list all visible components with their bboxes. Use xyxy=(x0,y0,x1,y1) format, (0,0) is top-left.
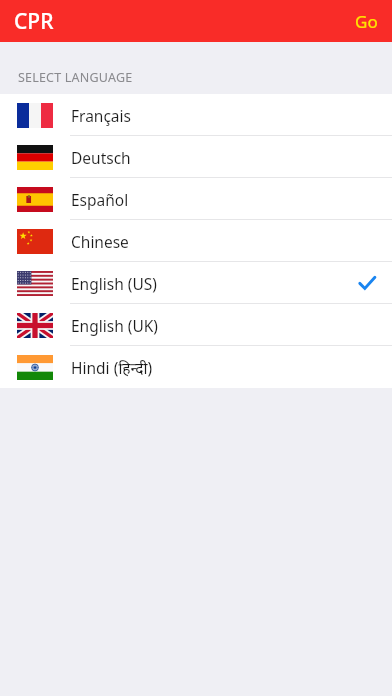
button[interactable]: Deutsch xyxy=(0,136,392,178)
staticText: Hindi (हिन्दी) xyxy=(71,357,153,378)
button[interactable]: Español xyxy=(0,178,392,220)
button[interactable]: Go xyxy=(341,4,392,39)
staticText: English (UK) xyxy=(71,315,158,336)
staticText: SELECT LANGUAGE xyxy=(18,69,133,86)
button[interactable]: Chinese xyxy=(0,220,392,262)
other: Selected xyxy=(358,274,376,292)
staticText: Español xyxy=(71,189,129,210)
staticText: Chinese xyxy=(71,231,129,252)
staticText: English (US) xyxy=(71,273,157,294)
staticText: Deutsch xyxy=(71,147,131,168)
staticText: CPR xyxy=(14,7,54,36)
staticText: Go xyxy=(355,10,378,33)
button[interactable]: Français xyxy=(0,94,392,136)
staticText: Français xyxy=(71,105,131,126)
button[interactable]: English (US) xyxy=(0,262,392,304)
button[interactable]: English (UK) xyxy=(0,304,392,346)
button[interactable]: Hindi (हिन्दी) xyxy=(0,346,392,388)
